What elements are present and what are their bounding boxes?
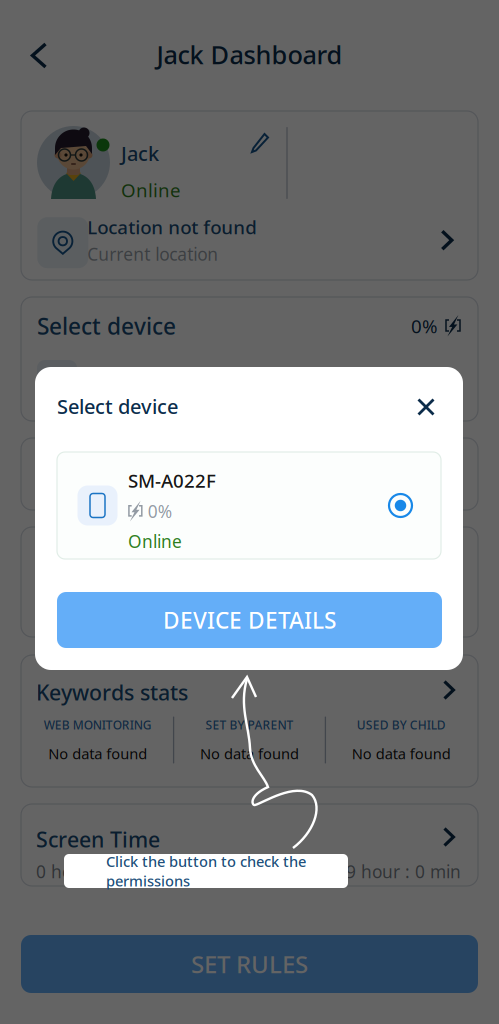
button[interactable]: DEVICE DETAILS [57, 592, 442, 648]
staticText: No data found [48, 744, 147, 763]
button[interactable]: SM-A022F [57, 452, 441, 559]
staticText: Select device [57, 393, 178, 420]
staticText: USED BY CHILD [357, 717, 446, 733]
button[interactable]: Location not found [37, 214, 478, 272]
staticText: 9 hour : 0 min [346, 860, 461, 883]
staticText: Screen Time [36, 825, 160, 853]
staticText: Location not found [87, 215, 257, 239]
staticText: Jack [121, 140, 159, 167]
staticText: Current location [87, 242, 218, 265]
staticText: Jack Dashboard [156, 38, 342, 71]
staticText: No data found [352, 744, 451, 763]
staticText: Select device [37, 311, 176, 341]
staticText: DEVICE DETAILS [163, 605, 336, 635]
button[interactable]: SET RULES [21, 935, 478, 993]
staticText: Online [121, 178, 181, 202]
staticText: No data found [200, 744, 299, 763]
button[interactable]: Back [16, 32, 62, 78]
staticText: SET RULES [191, 948, 308, 980]
staticText: SM-A022F [128, 468, 216, 493]
staticText: 0 hour : 0 min [36, 860, 151, 883]
staticText: Click the button to check the permission… [106, 851, 306, 890]
button[interactable]: Screen Time [36, 817, 461, 857]
button[interactable]: Keywords stats [36, 669, 461, 713]
staticText: SET BY PARENT [205, 717, 293, 733]
staticText: Keywords stats [36, 678, 188, 706]
button[interactable]: Close [413, 394, 439, 420]
staticText: WEB MONITORING [44, 717, 152, 733]
staticText: Online [128, 530, 182, 553]
staticText: SM-A022F [91, 365, 191, 393]
button[interactable]: Edit profile [242, 125, 278, 161]
staticText: 0% [411, 314, 438, 338]
staticText: 0% [148, 500, 172, 523]
